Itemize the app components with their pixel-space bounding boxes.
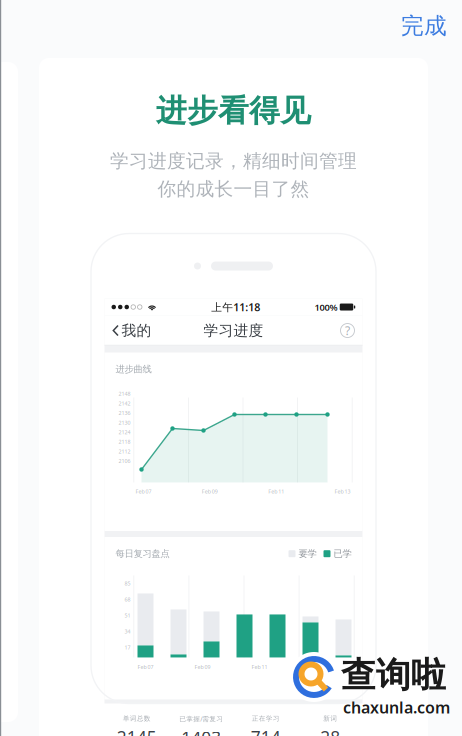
staticText: 714 <box>251 726 281 736</box>
staticText: 2142 <box>118 400 130 407</box>
staticText: 查询啦 <box>341 654 446 697</box>
staticText: 2148 <box>118 390 130 397</box>
staticText: 你的成长一目了然 <box>157 178 309 200</box>
staticText: chaxunla.com <box>343 697 450 718</box>
staticText: Feb 11 <box>268 488 284 495</box>
staticText: Feb 07 <box>135 488 151 495</box>
staticText: 2130 <box>118 419 130 426</box>
staticText: Feb 09 <box>194 663 210 670</box>
staticText: 完成 <box>401 12 447 40</box>
staticText: 2112 <box>118 448 130 455</box>
staticText: 100% <box>314 301 337 313</box>
staticText: 进步看得见 <box>156 92 311 130</box>
button[interactable]: 完成 <box>387 5 461 47</box>
staticText: 正在学习 <box>252 714 280 723</box>
staticText: 28 <box>320 726 340 736</box>
staticText: 34 <box>124 628 130 635</box>
staticText: 我的 <box>121 321 151 339</box>
button[interactable]: Help <box>332 323 362 337</box>
staticText: 2136 <box>118 409 130 416</box>
staticText: 2124 <box>118 429 130 436</box>
staticText: 新词 <box>323 714 337 723</box>
staticText: 学习进度记录，精细时间管理 <box>110 150 357 173</box>
button[interactable]: 我的 <box>104 318 159 342</box>
staticText: 1403 <box>181 726 221 736</box>
staticText: 2118 <box>118 438 130 445</box>
staticText: 68 <box>124 596 130 603</box>
staticText: 85 <box>124 580 130 587</box>
staticText: 上午11:18 <box>211 300 260 314</box>
staticText: Feb 13 <box>334 488 350 495</box>
staticText: Feb 09 <box>202 488 218 495</box>
staticText: Feb 11 <box>251 663 267 670</box>
staticText: 已学 <box>333 548 351 559</box>
staticText: 已掌握/需复习 <box>179 714 223 723</box>
staticText: 每日复习盘点 <box>115 548 169 559</box>
staticText: 要学 <box>298 548 316 559</box>
staticText: 单词总数 <box>123 714 151 723</box>
staticText: 17 <box>124 644 130 651</box>
staticText: 2145 <box>117 726 157 736</box>
staticText: Feb 07 <box>137 663 153 670</box>
staticText: 2106 <box>118 457 130 464</box>
staticText: 51 <box>124 612 130 619</box>
staticText: 学习进度 <box>203 321 263 339</box>
staticText: 进步曲线 <box>115 363 151 375</box>
staticText: ? <box>345 323 350 338</box>
